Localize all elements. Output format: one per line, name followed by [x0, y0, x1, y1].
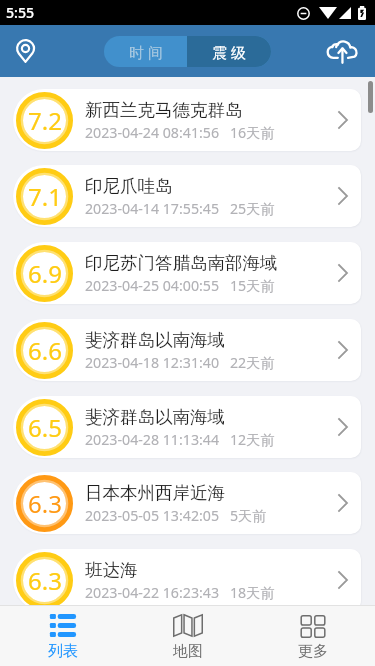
- staticText: 斐济群岛以南海域: [85, 329, 225, 351]
- button[interactable]: 更多: [250, 606, 375, 666]
- staticText: 5天前: [230, 506, 267, 525]
- staticText: 2023-04-24 08:41:56: [85, 123, 220, 142]
- staticText: 15天前: [230, 276, 275, 295]
- staticText: 印尼爪哇岛: [85, 175, 173, 197]
- staticText: 时 间: [129, 42, 163, 62]
- staticText: 2023-04-25 04:00:55: [85, 276, 220, 295]
- staticText: 18天前: [230, 583, 275, 602]
- staticText: 16天前: [230, 123, 275, 142]
- button[interactable]: 震 级: [187, 36, 271, 67]
- staticText: 震 级: [212, 42, 246, 62]
- button[interactable]: 6.3: [13, 472, 361, 534]
- staticText: 列表: [48, 642, 78, 661]
- staticText: 6.9: [28, 257, 62, 290]
- staticText: 2023-05-05 13:42:05: [85, 506, 220, 525]
- staticText: 22天前: [230, 353, 275, 372]
- button[interactable]: 6.5: [13, 396, 361, 458]
- staticText: 6.6: [28, 334, 62, 367]
- staticText: 印尼苏门答腊岛南部海域: [85, 252, 278, 274]
- staticText: 2023-04-18 12:31:40: [85, 353, 220, 372]
- staticText: 25天前: [230, 199, 275, 218]
- staticText: 地图: [173, 642, 203, 661]
- staticText: 更多: [298, 642, 328, 661]
- staticText: 2023-04-14 17:55:45: [85, 199, 220, 218]
- button[interactable]: 6.3: [13, 549, 361, 605]
- staticText: 日本本州西岸近海: [85, 482, 225, 504]
- button[interactable]: Upload: [325, 34, 359, 68]
- staticText: 班达海: [85, 559, 138, 581]
- staticText: 6.5: [28, 411, 62, 444]
- staticText: 12天前: [230, 430, 275, 449]
- button[interactable]: 列表: [0, 606, 125, 666]
- staticText: 2023-04-28 11:13:44: [85, 430, 220, 449]
- staticText: 斐济群岛以南海域: [85, 406, 225, 428]
- staticText: 新西兰克马德克群岛: [85, 99, 243, 121]
- staticText: 5:55: [6, 3, 35, 22]
- staticText: 7.1: [28, 180, 62, 213]
- staticText: 7.2: [28, 104, 62, 137]
- button[interactable]: Location: [9, 35, 42, 68]
- button[interactable]: 时 间: [104, 36, 187, 67]
- staticText: 6.3: [28, 487, 62, 520]
- button[interactable]: 地图: [125, 606, 250, 666]
- button[interactable]: 7.1: [13, 165, 361, 227]
- staticText: 2023-04-22 16:23:43: [85, 583, 220, 602]
- button[interactable]: 7.2: [13, 89, 361, 151]
- staticText: 6.3: [28, 564, 62, 597]
- button[interactable]: 6.6: [13, 319, 361, 381]
- button[interactable]: 6.9: [13, 242, 361, 304]
